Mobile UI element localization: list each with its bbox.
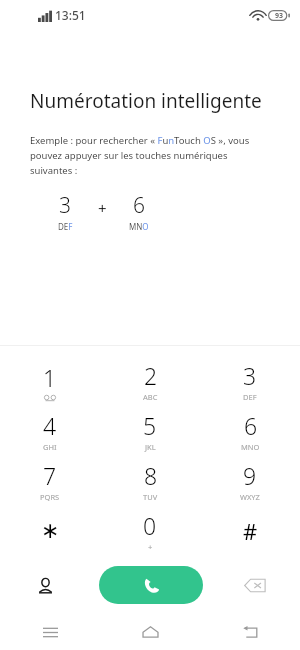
- staticText: 93: [275, 11, 284, 21]
- staticText: PQRS: [40, 492, 60, 502]
- button[interactable]: ∗: [0, 506, 100, 556]
- staticText: TUV: [143, 492, 158, 502]
- staticText: 4: [43, 410, 57, 441]
- staticText: 1: [43, 362, 57, 393]
- staticText: 3: [243, 360, 257, 391]
- button[interactable]: 6: [200, 406, 300, 456]
- staticText: ∗: [41, 518, 60, 544]
- staticText: MNO: [129, 221, 149, 232]
- staticText: 8: [144, 460, 158, 491]
- staticText: 2: [144, 360, 158, 391]
- staticText: #: [243, 516, 258, 546]
- button[interactable]: 7: [0, 456, 100, 506]
- button[interactable]: Recent apps: [0, 614, 100, 650]
- button[interactable]: 0: [100, 506, 200, 556]
- button[interactable]: Call: [99, 566, 203, 604]
- button[interactable]: 5: [100, 406, 200, 456]
- staticText: WXYZ: [240, 492, 260, 502]
- staticText: Exemple : pour rechercher « FunTouch OS …: [30, 134, 276, 177]
- button[interactable]: 3: [200, 356, 300, 406]
- staticText: Numérotation intelligente: [30, 88, 262, 114]
- button[interactable]: Back: [200, 614, 300, 650]
- staticText: 5: [143, 410, 157, 441]
- staticText: 6: [133, 191, 145, 220]
- staticText: 13:51: [55, 7, 86, 23]
- staticText: 6: [244, 410, 258, 441]
- button[interactable]: 9: [200, 456, 300, 506]
- staticText: DEF: [243, 392, 257, 402]
- staticText: 3: [59, 191, 71, 220]
- staticText: DEF: [58, 221, 73, 232]
- button[interactable]: 1: [0, 356, 100, 406]
- button[interactable]: 8: [100, 456, 200, 506]
- staticText: 0: [143, 510, 157, 541]
- staticText: JKL: [145, 442, 156, 452]
- button[interactable]: Home: [100, 614, 200, 650]
- button[interactable]: #: [200, 506, 300, 556]
- button[interactable]: Contacts: [0, 562, 91, 608]
- button[interactable]: 4: [0, 406, 100, 456]
- button[interactable]: 2: [100, 356, 200, 406]
- staticText: +: [98, 198, 107, 218]
- staticText: MNO: [241, 442, 260, 452]
- staticText: 9: [243, 460, 257, 491]
- staticText: GHI: [43, 442, 57, 452]
- staticText: 7: [43, 460, 57, 491]
- button[interactable]: Backspace: [210, 562, 300, 608]
- staticText: +: [148, 542, 153, 552]
- staticText: ABC: [143, 392, 158, 402]
